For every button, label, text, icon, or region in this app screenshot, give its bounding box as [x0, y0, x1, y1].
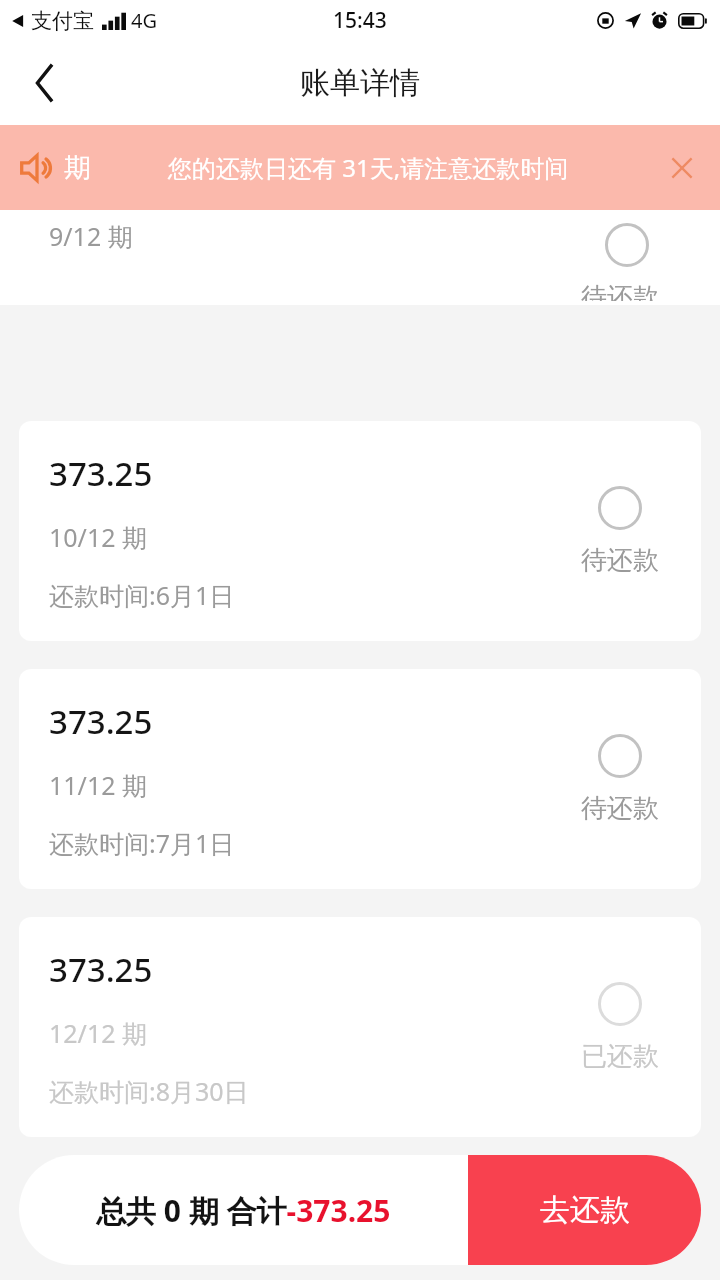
staticText: 已还款 — [581, 1040, 659, 1073]
staticText: 期 — [64, 151, 91, 185]
button[interactable]: 返回 — [14, 52, 76, 114]
staticText: 15:43 — [333, 6, 387, 35]
button[interactable]: 按期还款 — [0, 210, 360, 305]
button[interactable]: 总共 0 期 合计-373.25 — [19, 1155, 468, 1265]
staticText: 待还款 — [581, 792, 659, 825]
button[interactable]: 373.25 — [19, 421, 701, 641]
staticText: 373.25 — [49, 451, 153, 496]
button[interactable]: 去还款 — [468, 1155, 701, 1265]
staticText: 总共 0 期 合计-373.25 — [96, 1190, 391, 1231]
staticText: 373.25 — [49, 699, 153, 744]
staticText: 11/12 期 — [49, 768, 148, 802]
staticText: 还款时间:7月1日 — [49, 826, 235, 860]
staticText: 您的还款日还有 31天,请注意还款时间 — [168, 151, 569, 184]
staticText: 4G — [131, 7, 157, 34]
staticText: 12/12 期 — [49, 1016, 148, 1050]
staticText: 待还款 — [581, 281, 659, 301]
staticText: 账单详情 — [300, 64, 420, 102]
staticText: 去还款 — [540, 1191, 630, 1229]
staticText: 10/12 期 — [49, 520, 148, 554]
button[interactable]: 373.25 — [19, 917, 701, 1137]
button[interactable]: 关闭 — [656, 142, 708, 194]
button[interactable]: 373.25 — [19, 669, 701, 889]
staticText: 9/12 期 — [49, 219, 133, 253]
staticText: 还款时间:6月1日 — [49, 578, 235, 612]
staticText: 按期还款 — [122, 239, 238, 276]
staticText: 还款时间:8月30日 — [49, 1074, 249, 1108]
button[interactable]: 提前还款 — [360, 210, 720, 305]
staticText: 待还款 — [581, 544, 659, 577]
staticText: 373.25 — [49, 947, 153, 992]
staticText: 支付宝 — [31, 8, 94, 34]
